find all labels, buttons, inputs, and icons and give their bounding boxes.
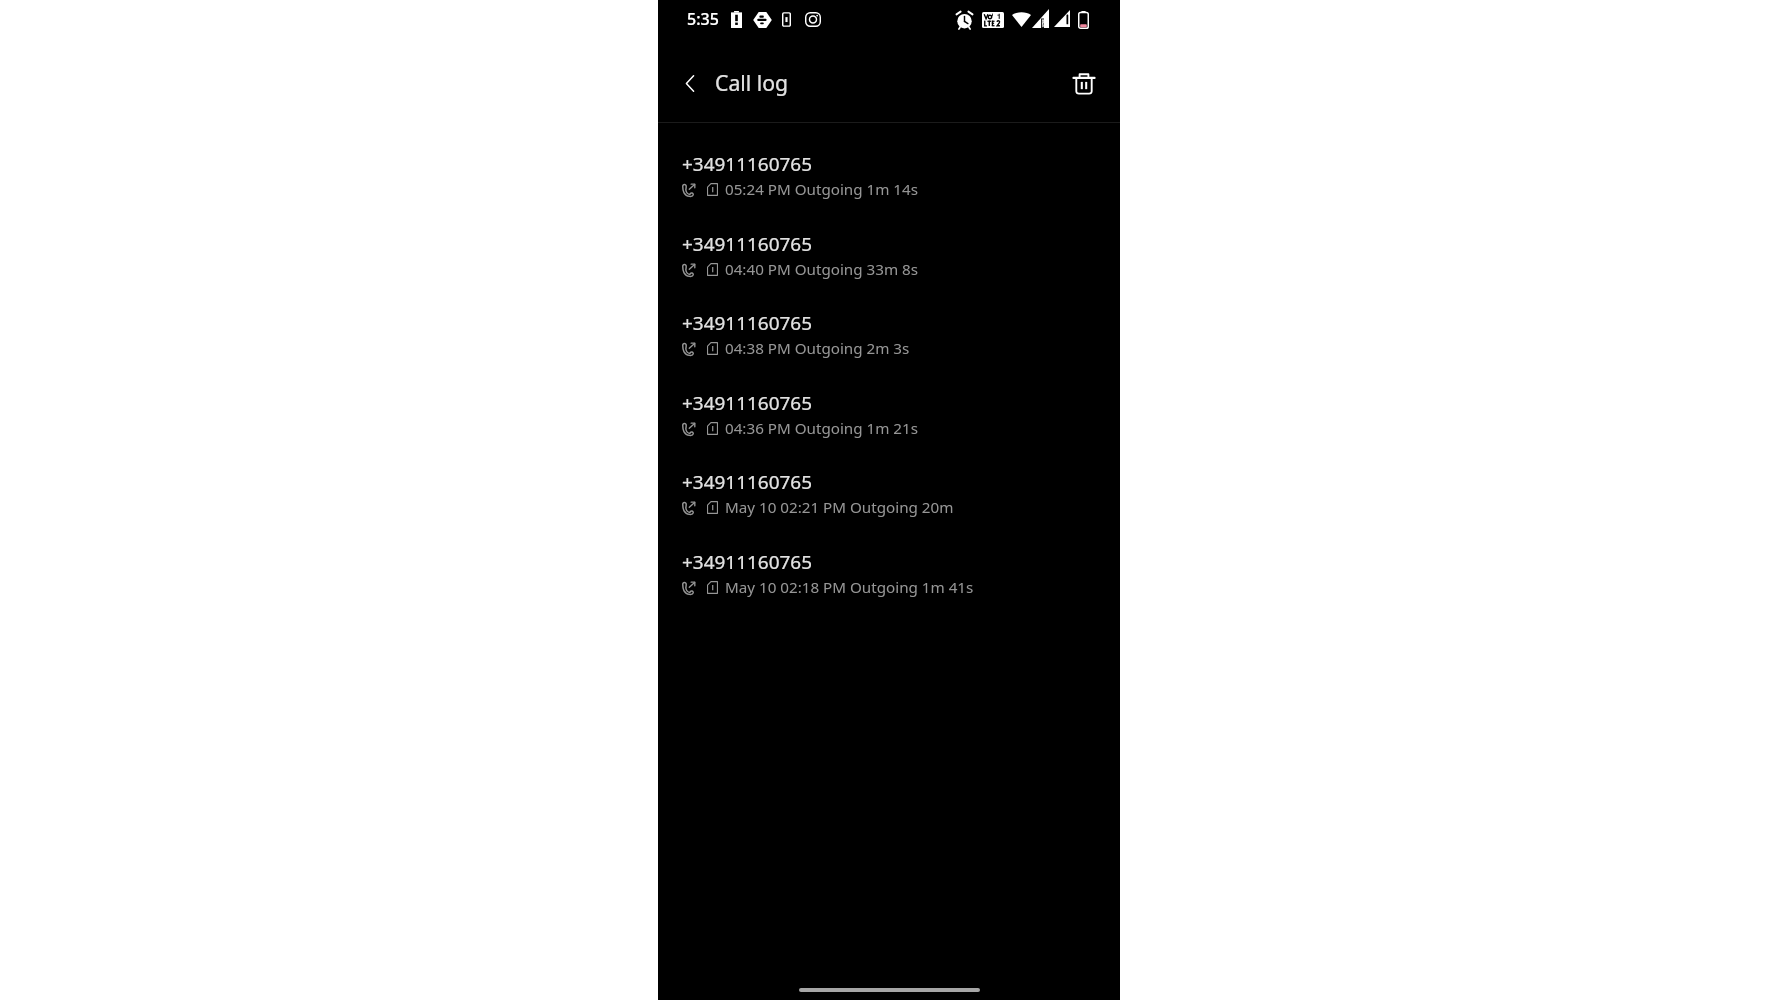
staticText: 05:24 PM Outgoing 1m 14s xyxy=(725,179,919,200)
button[interactable]: Delete xyxy=(1060,59,1108,107)
staticText: +34911160765 xyxy=(682,151,812,177)
staticText: 04:38 PM Outgoing 2m 3s xyxy=(725,338,910,359)
staticText: +34911160765 xyxy=(682,549,812,575)
staticText: May 10 02:21 PM Outgoing 20m xyxy=(725,497,954,518)
staticText: 04:36 PM Outgoing 1m 21s xyxy=(725,418,919,439)
staticText: May 10 02:18 PM Outgoing 1m 41s xyxy=(725,577,974,598)
staticText: +34911160765 xyxy=(682,469,812,495)
button[interactable]: +34911160765 xyxy=(658,222,1120,302)
staticText: +34911160765 xyxy=(682,310,812,336)
button[interactable]: +34911160765 xyxy=(658,301,1120,381)
staticText: 5:35 xyxy=(687,8,719,30)
button[interactable]: Back xyxy=(666,59,714,107)
button[interactable]: +34911160765 xyxy=(658,540,1120,620)
button[interactable]: +34911160765 xyxy=(658,460,1120,540)
staticText: Call log xyxy=(715,68,789,97)
button[interactable]: +34911160765 xyxy=(658,142,1120,222)
button[interactable]: +34911160765 xyxy=(658,381,1120,461)
staticText: +34911160765 xyxy=(682,390,812,416)
staticText: +34911160765 xyxy=(682,231,812,257)
staticText: 04:40 PM Outgoing 33m 8s xyxy=(725,259,919,280)
